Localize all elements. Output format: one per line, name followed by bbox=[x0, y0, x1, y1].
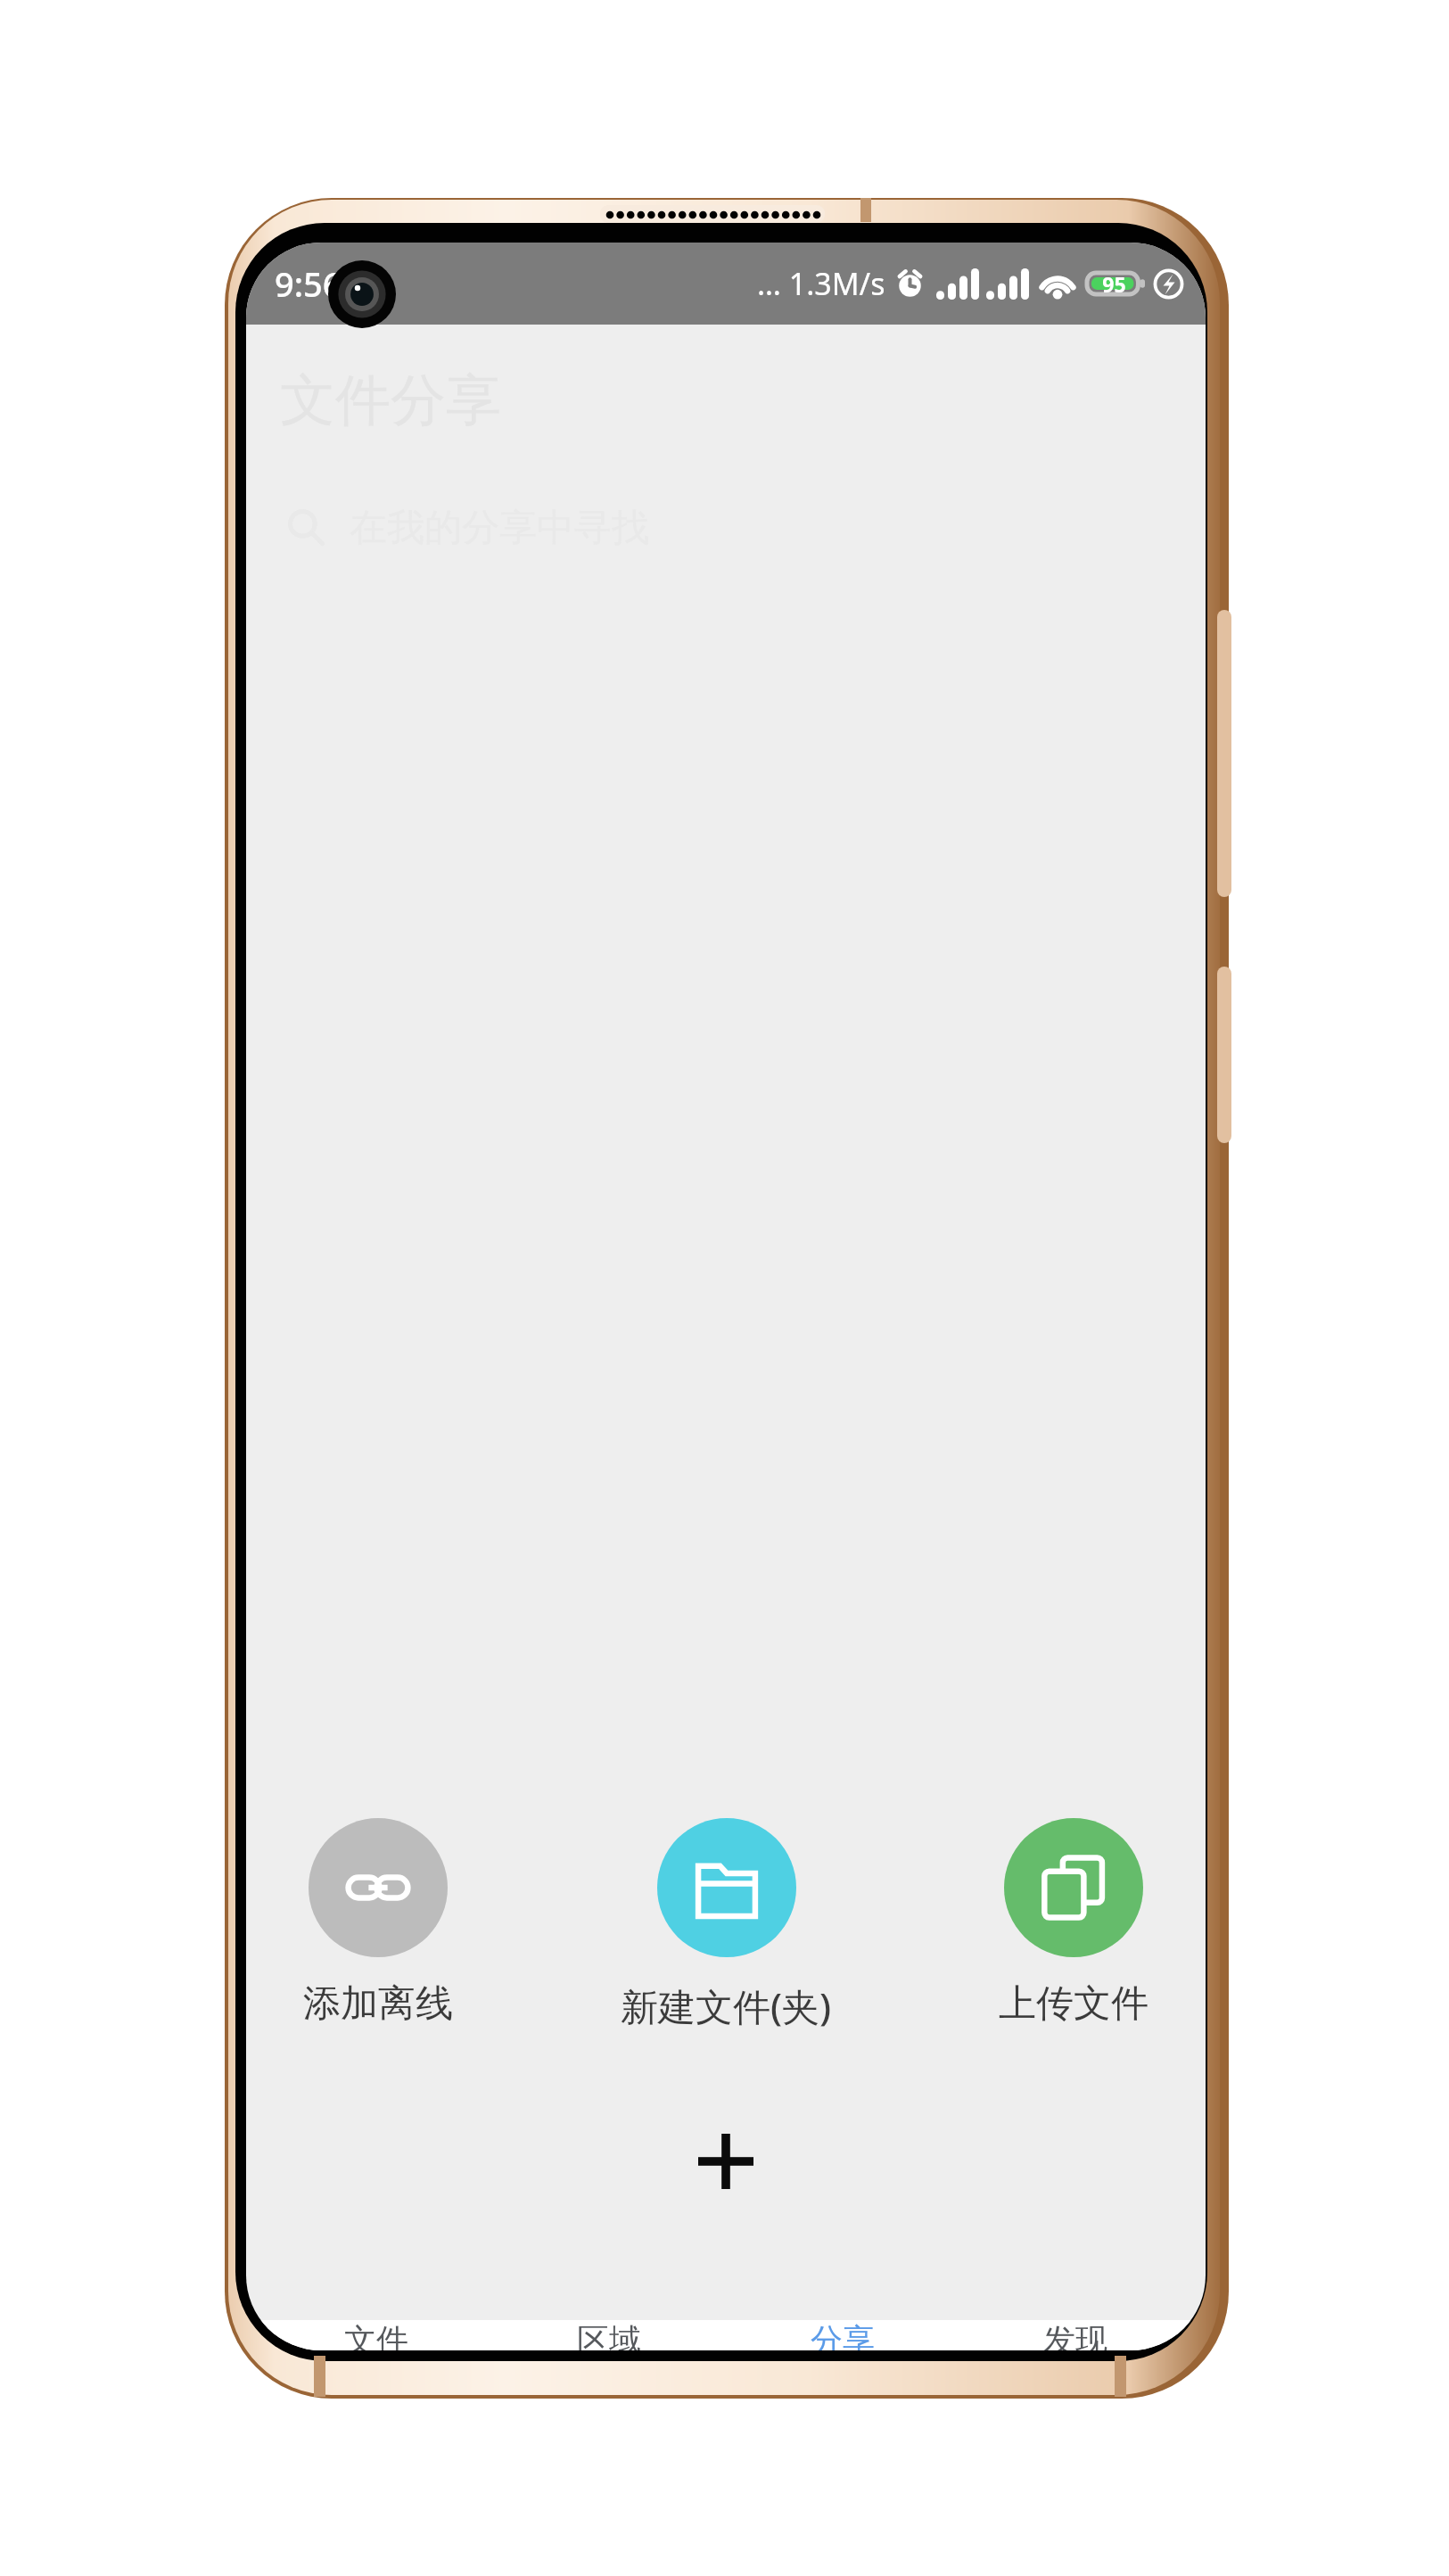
button[interactable]: 发现 bbox=[973, 2320, 1178, 2350]
button[interactable]: Add bbox=[672, 2108, 779, 2215]
button[interactable]: 文件 bbox=[274, 2320, 479, 2350]
staticText: 上传文件 bbox=[999, 1980, 1148, 2028]
staticText: 分享 bbox=[811, 2320, 875, 2350]
staticText: 95 bbox=[1102, 270, 1126, 298]
button[interactable]: 在我的分享中寻找 bbox=[246, 481, 1206, 574]
button[interactable]: 区域 bbox=[506, 2320, 712, 2350]
staticText: 添加离线 bbox=[303, 1980, 453, 2028]
staticText: … 1.3M/s bbox=[757, 263, 885, 304]
staticText: 文件 bbox=[344, 2320, 408, 2350]
button[interactable]: 添加离线 bbox=[294, 1818, 462, 2028]
staticText: 文件分享 bbox=[280, 366, 501, 435]
staticText: 9:56 bbox=[275, 260, 342, 307]
button[interactable]: 新建文件(夹) bbox=[612, 1818, 841, 2031]
staticText: 区域 bbox=[577, 2320, 641, 2350]
button[interactable]: 分享 bbox=[740, 2320, 945, 2350]
button[interactable]: 上传文件 bbox=[990, 1818, 1157, 2028]
staticText: 新建文件(夹) bbox=[621, 1980, 832, 2031]
staticText: 发现 bbox=[1043, 2320, 1107, 2350]
